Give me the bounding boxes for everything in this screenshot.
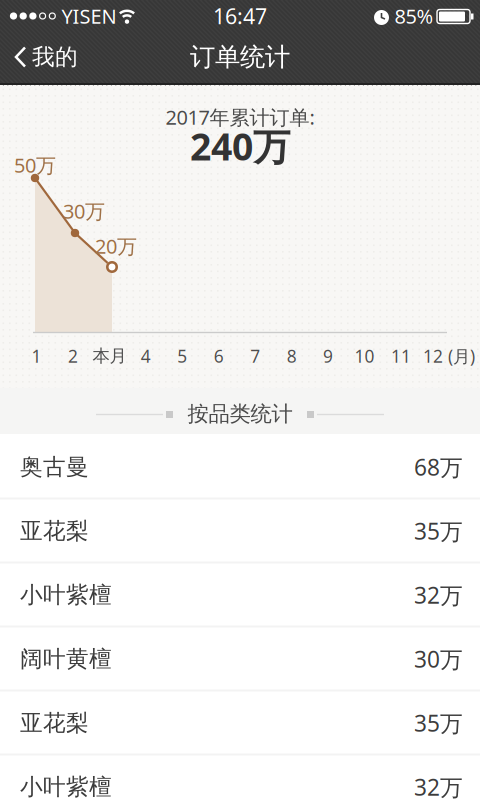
staticText: 5	[177, 344, 187, 367]
staticText: 16:47	[213, 2, 267, 30]
staticText: 30万	[63, 198, 105, 224]
staticText: 9	[323, 344, 333, 367]
staticText: 我的	[32, 43, 78, 71]
staticText: 30万	[414, 644, 463, 674]
button[interactable]: 返回我的	[14, 43, 78, 71]
staticText: 12 (月)	[423, 344, 475, 367]
staticText: 50万	[14, 152, 56, 178]
staticText: 订单统计	[190, 41, 290, 72]
staticText: 7	[250, 344, 260, 367]
staticText: 240万	[190, 121, 290, 171]
staticText: 35万	[414, 516, 463, 546]
staticText: 32万	[414, 580, 463, 610]
staticText: 8	[287, 344, 297, 367]
staticText: 亚花梨	[20, 517, 89, 545]
staticText: 10	[355, 344, 375, 367]
staticText: 2	[68, 344, 78, 367]
staticText: 奥古曼	[20, 453, 89, 481]
staticText: 本月	[92, 345, 126, 367]
staticText: 11	[391, 344, 411, 367]
staticText: 小叶紫檀	[20, 773, 112, 800]
staticText: 阔叶黄檀	[20, 645, 112, 673]
staticText: 1	[31, 344, 41, 367]
staticText: YISEN	[61, 3, 116, 29]
staticText: 32万	[414, 772, 463, 800]
staticText: 6	[214, 344, 224, 367]
staticText: 85%	[394, 3, 433, 29]
staticText: 小叶紫檀	[20, 581, 112, 609]
staticText: 4	[141, 344, 151, 367]
staticText: 35万	[414, 708, 463, 738]
staticText: 68万	[414, 452, 463, 482]
staticText: 20万	[95, 233, 137, 259]
staticText: 2017年累计订单:	[165, 104, 314, 130]
staticText: 亚花梨	[20, 709, 89, 737]
staticText: 按品类统计	[187, 401, 292, 427]
